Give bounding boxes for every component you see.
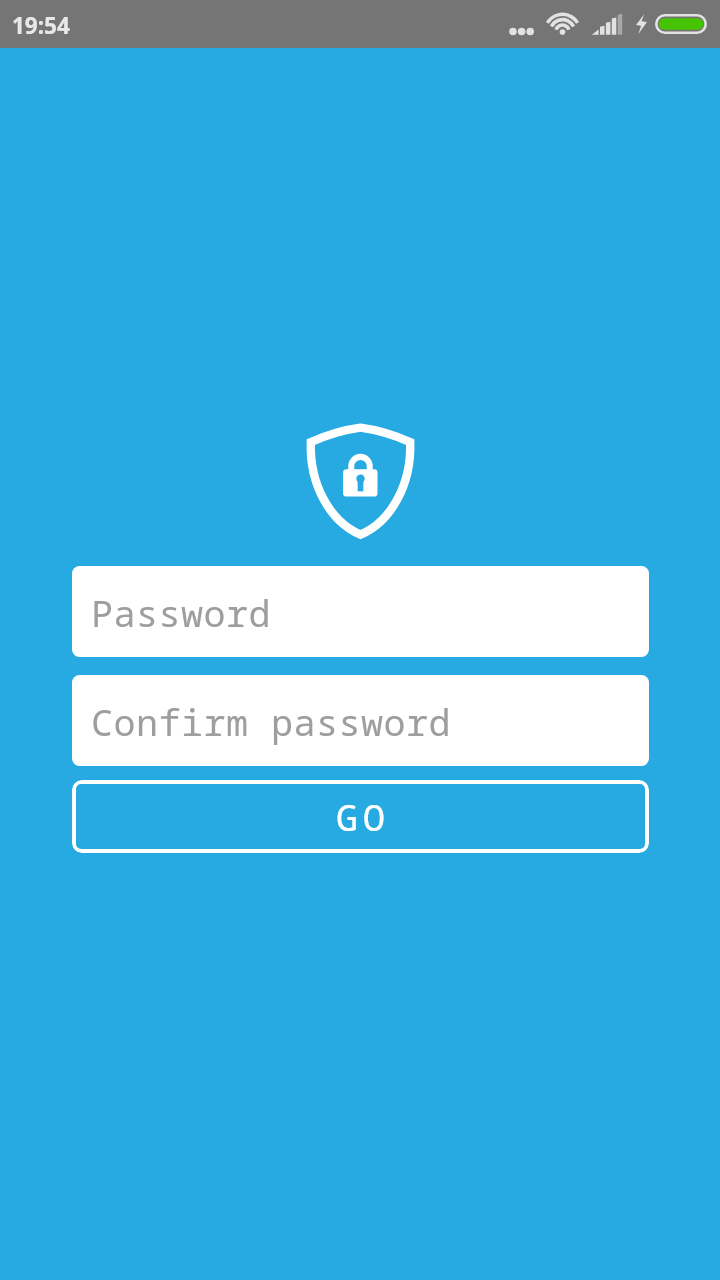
other: Security shield — [303, 423, 418, 540]
button[interactable]: GO — [72, 780, 649, 853]
staticText: Confirm password — [91, 697, 451, 747]
staticText: 19:54 — [12, 10, 70, 41]
button[interactable]: Password — [72, 566, 649, 657]
staticText: Password — [91, 588, 271, 638]
button[interactable]: Confirm password — [72, 675, 649, 766]
staticText: GO — [336, 791, 390, 842]
